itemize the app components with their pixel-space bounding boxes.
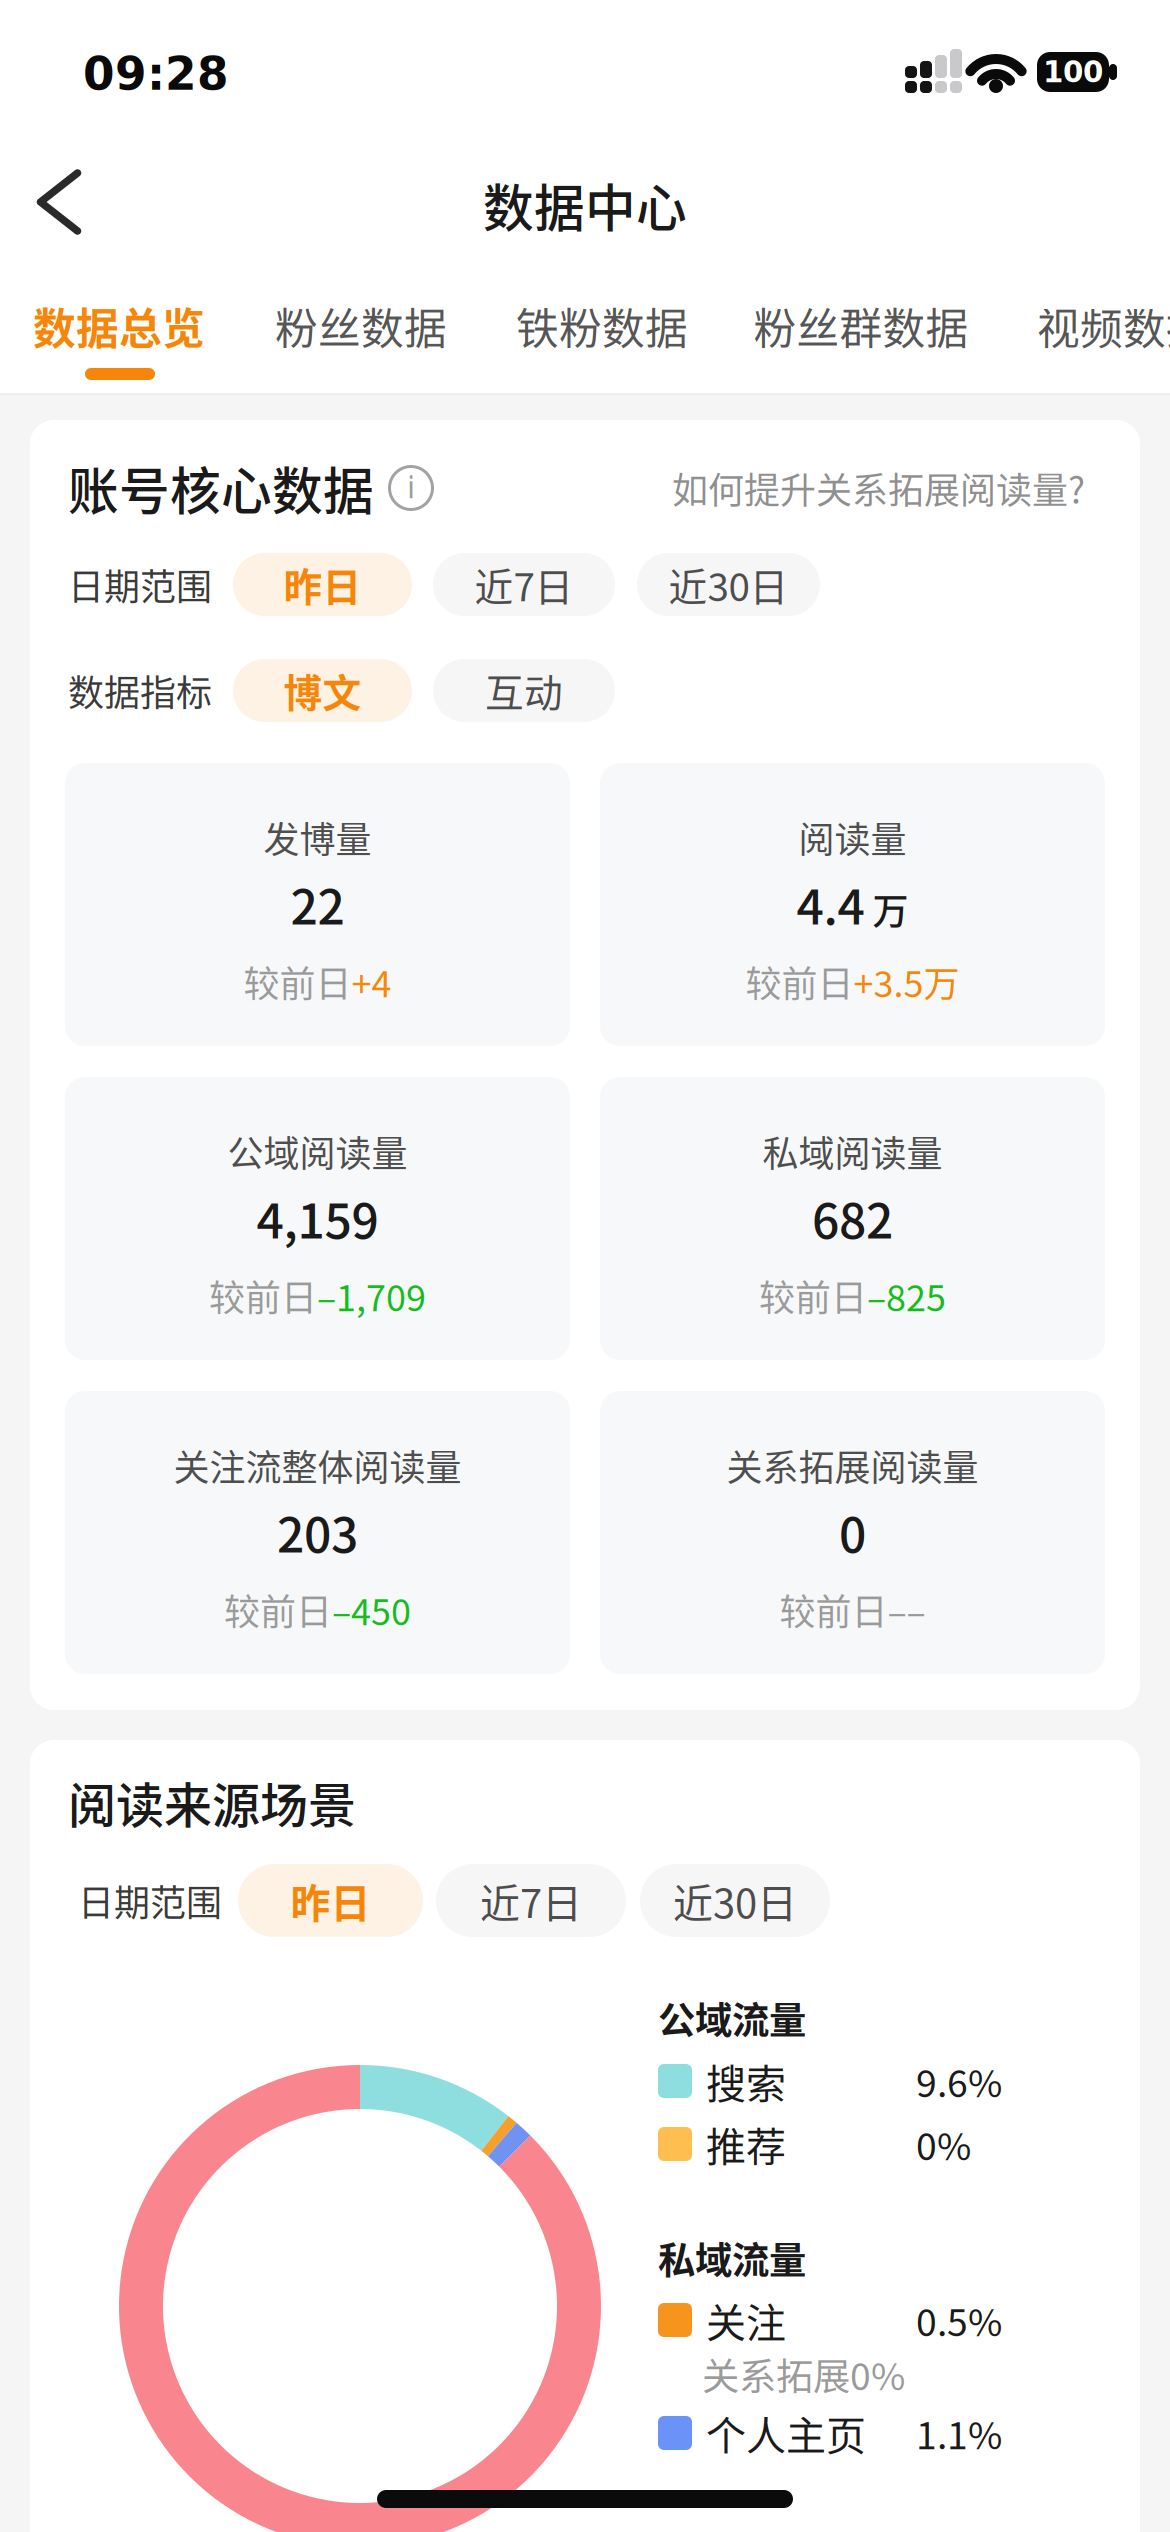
staticText: –450 (332, 1584, 411, 1635)
staticText: 较前日 (759, 1270, 867, 1321)
button[interactable]: 数据总览 (9, 288, 229, 364)
staticText: 推荐 (706, 2116, 786, 2172)
staticText: 09:28 (83, 48, 229, 100)
staticText: 100 (1043, 55, 1103, 89)
button[interactable]: 近7日 (436, 1864, 626, 1937)
button[interactable]: Back (19, 162, 99, 242)
button[interactable]: 近7日 (433, 553, 615, 616)
staticText: 阅读来源场景 (68, 1768, 356, 1836)
staticText: +3.5万 (853, 956, 959, 1007)
staticText: 关注流整体阅读量 (173, 1440, 461, 1491)
staticText: 0.5% (916, 2294, 1002, 2346)
button[interactable]: 昨日 (238, 1864, 423, 1937)
staticText: 0 (839, 1497, 866, 1566)
staticText: 如何提升关系拓展阅读量? (672, 463, 1085, 513)
staticText: 22 (290, 869, 344, 938)
staticText: 4,159 (256, 1183, 378, 1252)
staticText: 近30日 (668, 557, 788, 612)
staticText: 昨日 (290, 1872, 370, 1929)
staticText: 近30日 (673, 1872, 797, 1929)
staticText: 铁粉数据 (516, 296, 688, 356)
staticText: 较前日 (209, 1270, 317, 1321)
button[interactable]: 近30日 (640, 1864, 830, 1937)
button[interactable]: 互动 (433, 659, 615, 722)
staticText: 博文 (283, 663, 361, 718)
staticText: 较前日 (779, 1584, 887, 1635)
staticText: 互动 (485, 663, 563, 718)
staticText: 682 (812, 1183, 893, 1252)
button[interactable]: 粉丝群数据 (741, 288, 981, 364)
staticText: 视频数据 (1037, 296, 1170, 356)
staticText: 较前日 (745, 956, 853, 1007)
staticText: 1.1% (916, 2407, 1002, 2459)
staticText: –825 (867, 1270, 946, 1321)
button[interactable]: 铁粉数据 (482, 288, 722, 364)
button[interactable]: 如何提升关系拓展阅读量? (672, 463, 1085, 513)
staticText: 数据总览 (33, 296, 205, 356)
button[interactable]: 视频数据 (1003, 288, 1170, 364)
staticText: 0% (916, 2118, 971, 2170)
staticText: 数据指标 (68, 665, 212, 716)
staticText: 日期范围 (78, 1875, 222, 1926)
button[interactable]: 发博量 (65, 763, 570, 1046)
staticText: 近7日 (474, 557, 573, 612)
staticText: +4 (351, 956, 391, 1007)
staticText: 粉丝数据 (275, 296, 447, 356)
staticText: –1,709 (317, 1270, 426, 1321)
staticText: 阅读量 (798, 812, 906, 863)
button[interactable]: 关系拓展阅读量 (600, 1391, 1105, 1674)
button[interactable]: 阅读量 (600, 763, 1105, 1046)
staticText: 203 (277, 1497, 358, 1566)
button[interactable]: 近30日 (637, 553, 820, 616)
staticText: 4.4 (796, 869, 864, 938)
button[interactable]: 昨日 (233, 553, 412, 616)
staticText: 粉丝群数据 (753, 296, 968, 356)
staticText: 个人主页 (706, 2405, 866, 2461)
staticText: 发博量 (263, 812, 371, 863)
staticText: 较前日 (243, 956, 351, 1007)
staticText: 近7日 (480, 1872, 582, 1929)
button[interactable]: 关注流整体阅读量 (65, 1391, 570, 1674)
staticText: 万 (872, 883, 908, 935)
staticText: 私域阅读量 (762, 1126, 942, 1177)
staticText: 关系拓展阅读量 (726, 1440, 978, 1491)
staticText: –– (887, 1584, 925, 1635)
button[interactable]: 粉丝数据 (241, 288, 481, 364)
staticText: 私域流量 (658, 2232, 806, 2284)
staticText: 关注 (706, 2292, 786, 2348)
staticText: 昨日 (283, 557, 361, 612)
staticText: i (407, 471, 415, 505)
staticText: 关系拓展0% (702, 2348, 905, 2400)
button[interactable]: 公域阅读量 (65, 1077, 570, 1360)
staticText: 较前日 (224, 1584, 332, 1635)
staticText: 数据中心 (483, 169, 687, 241)
staticText: 公域阅读量 (227, 1126, 407, 1177)
button[interactable]: 博文 (233, 659, 412, 722)
button[interactable]: Info (388, 465, 434, 511)
staticText: 日期范围 (68, 559, 212, 610)
staticText: 账号核心数据 (68, 452, 374, 524)
button[interactable]: 私域阅读量 (600, 1077, 1105, 1360)
staticText: 9.6% (916, 2055, 1002, 2107)
staticText: 公域流量 (658, 1992, 806, 2044)
staticText: 搜索 (706, 2053, 786, 2109)
